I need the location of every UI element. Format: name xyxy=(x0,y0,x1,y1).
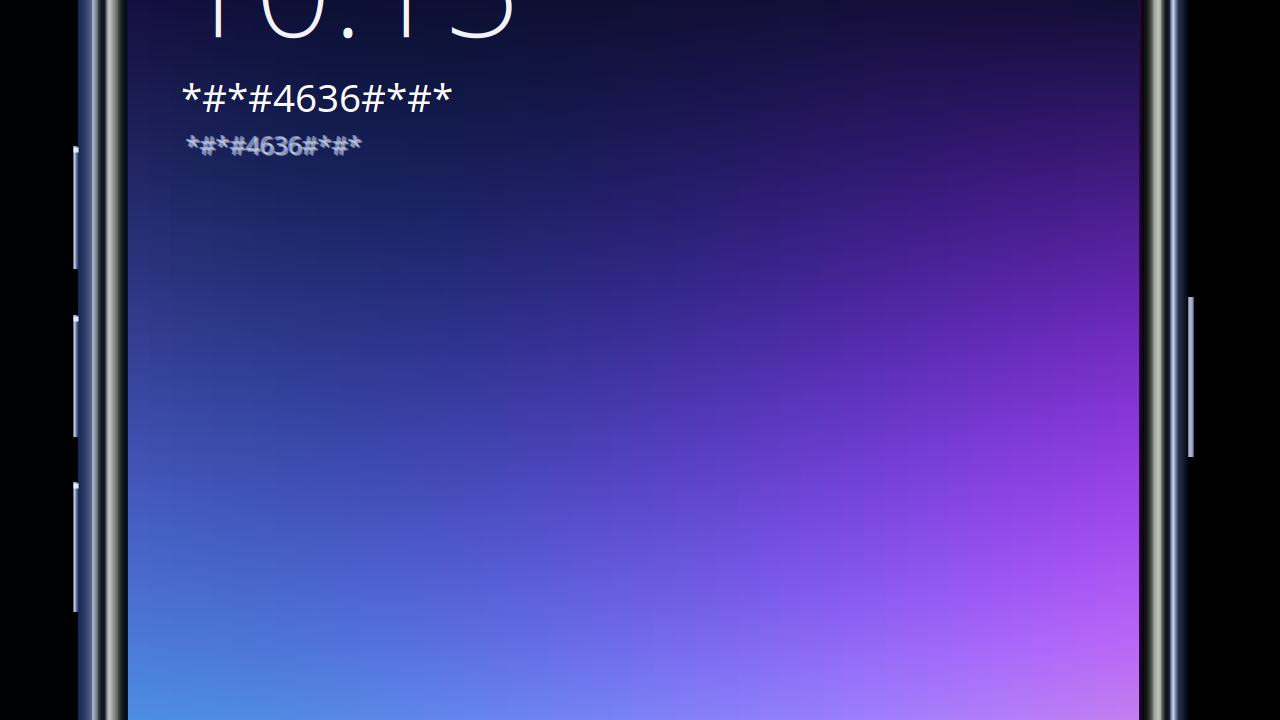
button[interactable]: Volume up xyxy=(0,0,1280,720)
staticText: *#*#4636#*#* xyxy=(187,129,363,163)
staticText: *#*#4636#*#* xyxy=(185,127,361,161)
button[interactable]: Volume down xyxy=(0,0,1280,720)
staticText: *#*#4636#*#* xyxy=(181,71,453,123)
button[interactable]: Side key xyxy=(0,0,1280,720)
staticText: *#*#4636#*#* xyxy=(186,128,362,162)
button[interactable]: Power xyxy=(0,0,1280,720)
staticText: 10:15 xyxy=(176,0,520,75)
